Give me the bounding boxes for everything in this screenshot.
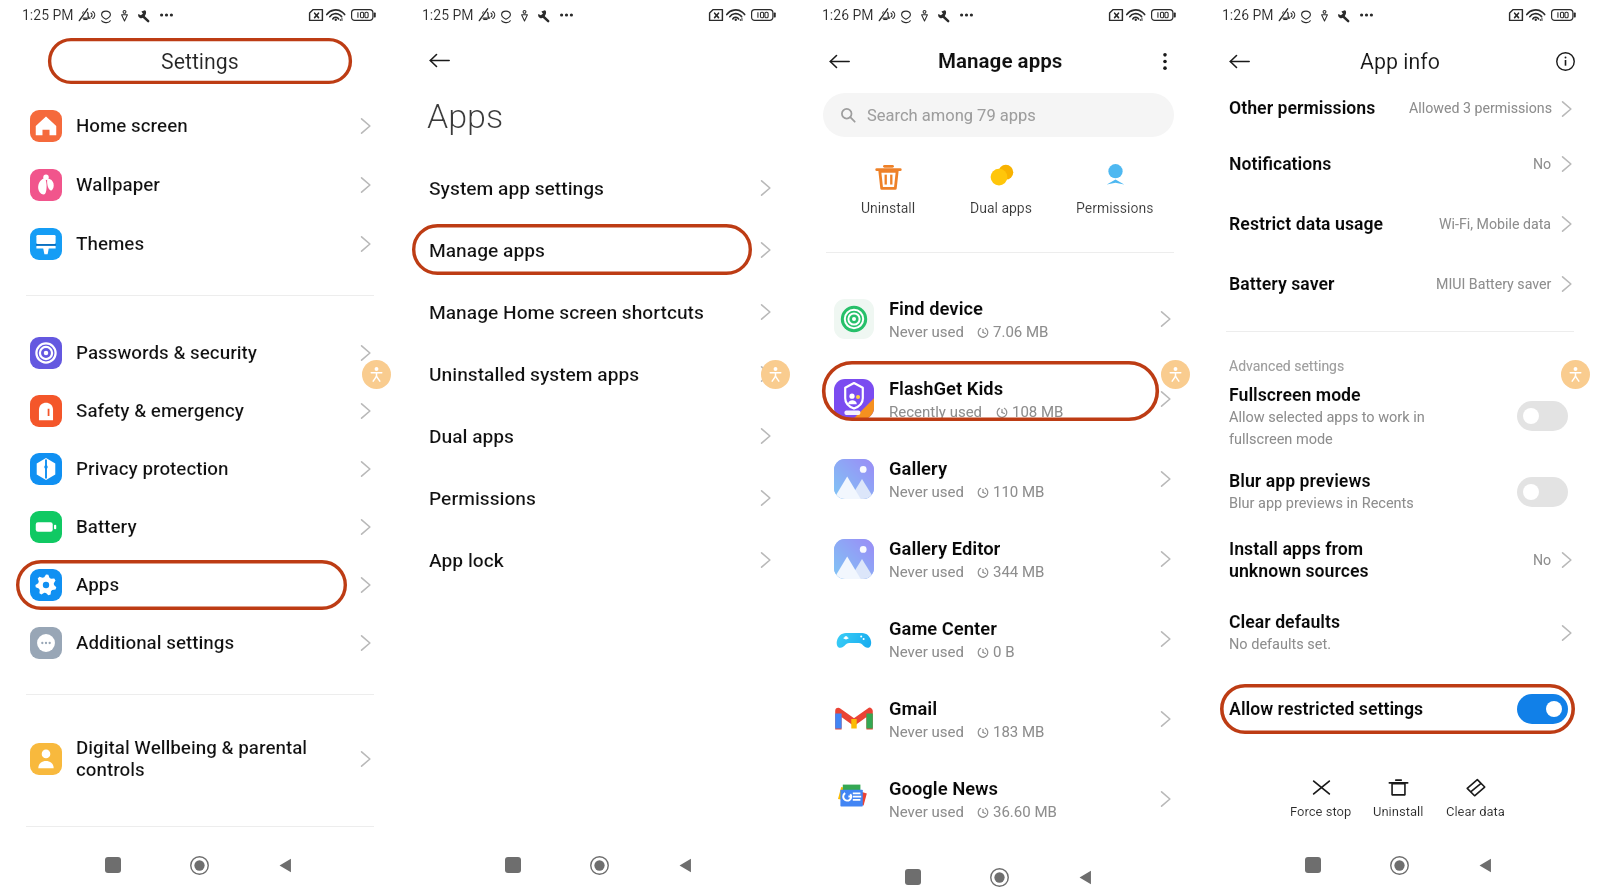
staticText: Settings	[161, 49, 239, 74]
button[interactable]: Manage Home screen shortcuts	[400, 281, 800, 343]
button[interactable]: Gallery Editor	[800, 519, 1200, 599]
button[interactable]: Other permissions	[1200, 83, 1600, 134]
staticText: Clear defaults	[1229, 612, 1341, 633]
staticText: Never used	[889, 723, 964, 741]
button[interactable]: Permissions	[400, 467, 800, 529]
button[interactable]: Back	[1469, 849, 1501, 881]
button[interactable]: Safety & emergency	[0, 382, 400, 440]
button[interactable]: Restrict data usage	[1200, 194, 1600, 254]
button[interactable]: Settings	[49, 39, 351, 83]
button[interactable]: Blur app previews	[1200, 471, 1600, 512]
button[interactable]: Clear defaults	[1200, 612, 1600, 653]
button[interactable]: Manage apps	[400, 219, 800, 281]
button[interactable]: Accessibility	[1561, 360, 1590, 389]
staticText: Game Center	[889, 618, 997, 640]
button[interactable]: Apps	[0, 556, 400, 614]
button[interactable]: Gallery	[800, 439, 1200, 519]
button[interactable]: Accessibility	[761, 360, 790, 389]
button[interactable]: Back	[423, 44, 455, 76]
button[interactable]: Uninstalled system apps	[400, 343, 800, 405]
staticText: Battery	[76, 516, 356, 538]
button[interactable]: Privacy protection	[0, 440, 400, 498]
staticText: Advanced settings	[1229, 358, 1345, 374]
button[interactable]: Gmail	[800, 679, 1200, 759]
button[interactable]: Home	[183, 849, 215, 881]
button[interactable]: Themes	[0, 214, 400, 273]
staticText: Dual apps	[970, 200, 1032, 216]
button[interactable]: Uninstall	[1365, 774, 1432, 821]
staticText: 108 MB	[1012, 403, 1064, 421]
button[interactable]: Game Center	[800, 599, 1200, 679]
button[interactable]: Find device	[800, 279, 1200, 359]
button[interactable]: Digital Wellbeing & parental controls	[0, 731, 400, 787]
button[interactable]: Recents	[97, 849, 129, 881]
button[interactable]: Additional settings	[0, 614, 400, 672]
button[interactable]: Home	[583, 849, 615, 881]
button[interactable]: Google News	[800, 759, 1200, 839]
button[interactable]: Dual apps	[400, 405, 800, 467]
staticText: No defaults set.	[1229, 636, 1332, 653]
staticText: No	[1533, 552, 1552, 569]
button[interactable]: Passwords & security	[0, 323, 400, 382]
staticText: Uninstall	[861, 200, 916, 216]
button[interactable]: Install apps from unknown sources	[1200, 539, 1600, 581]
staticText: Uninstall	[1373, 804, 1424, 819]
button[interactable]: Toggle on	[1517, 694, 1568, 724]
button[interactable]: Home screen	[0, 96, 400, 155]
button[interactable]: Recents	[497, 849, 529, 881]
staticText: Never used	[889, 563, 964, 581]
button[interactable]: Home	[1383, 849, 1415, 881]
staticText: Fullscreen mode	[1229, 385, 1361, 406]
staticText: Uninstalled system apps	[429, 363, 756, 386]
staticText: Passwords & security	[76, 342, 356, 364]
staticText: 1:26 PM	[822, 7, 874, 23]
button[interactable]: Search among 79 apps	[823, 93, 1174, 137]
staticText: Never used	[889, 803, 964, 821]
staticText: Blur app previews	[1229, 471, 1371, 492]
staticText: App info	[1360, 49, 1440, 74]
button[interactable]: Accessibility	[1161, 360, 1190, 389]
button[interactable]: Wallpaper	[0, 155, 400, 214]
button[interactable]: Uninstall	[851, 159, 926, 218]
staticText: Themes	[76, 233, 356, 255]
button[interactable]: Permissions	[1066, 159, 1164, 218]
staticText: Manage Home screen shortcuts	[429, 301, 756, 324]
staticText: Find device	[889, 298, 984, 320]
staticText: Restrict data usage	[1229, 214, 1384, 235]
button[interactable]: Toggle off	[1517, 401, 1568, 431]
button[interactable]: More options	[1152, 48, 1178, 74]
staticText: 1:25 PM	[22, 7, 74, 23]
staticText: Blur app previews in Recents	[1229, 495, 1414, 512]
staticText: Additional settings	[76, 632, 356, 654]
button[interactable]: Back	[669, 849, 701, 881]
button[interactable]: Toggle off	[1517, 477, 1568, 507]
staticText: Apps	[76, 574, 356, 596]
button[interactable]: Dual apps	[960, 159, 1042, 218]
button[interactable]: System app settings	[400, 157, 800, 219]
staticText: Allow restricted settings	[1229, 699, 1517, 720]
staticText: Recently used	[889, 403, 983, 421]
button[interactable]: Battery	[0, 498, 400, 556]
button[interactable]: Back	[1069, 861, 1101, 889]
button[interactable]: Back	[269, 849, 301, 881]
button[interactable]: FlashGet Kids	[800, 359, 1200, 439]
button[interactable]: Back	[823, 45, 855, 77]
staticText: Wi-Fi, Mobile data	[1439, 216, 1552, 233]
button[interactable]: Recents	[1297, 849, 1329, 881]
button[interactable]: Notifications	[1200, 134, 1600, 194]
button[interactable]: Fullscreen mode	[1200, 385, 1600, 447]
button[interactable]: Allow restricted settings	[1200, 684, 1600, 734]
button[interactable]: Info	[1552, 48, 1578, 74]
button[interactable]: Force stop	[1282, 774, 1360, 821]
staticText: Force stop	[1290, 804, 1352, 819]
staticText: MIUI Battery saver	[1436, 276, 1552, 293]
button[interactable]: Home	[983, 861, 1015, 889]
button[interactable]: Recents	[897, 861, 929, 889]
button[interactable]: Clear data	[1438, 774, 1513, 821]
button[interactable]: Accessibility	[362, 360, 391, 389]
button[interactable]: App lock	[400, 529, 800, 591]
staticText: Install apps from unknown sources	[1229, 539, 1533, 581]
button[interactable]: Battery saver	[1200, 254, 1600, 314]
button[interactable]: Back	[1223, 45, 1255, 77]
staticText: 110 MB	[993, 483, 1045, 501]
